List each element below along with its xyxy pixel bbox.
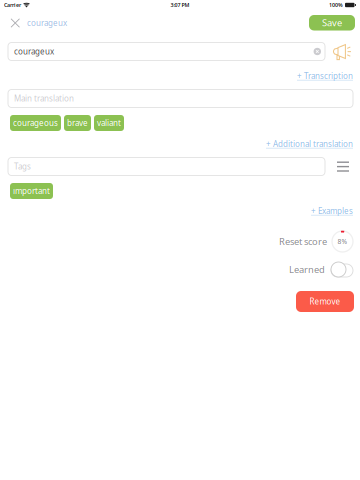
button[interactable]: Main translation <box>8 89 353 107</box>
button[interactable]: Remove <box>296 291 354 312</box>
staticText: important <box>13 186 50 196</box>
staticText: courageux <box>27 18 67 28</box>
staticText: 3:07 PM <box>170 1 189 9</box>
button[interactable]: important <box>10 183 53 199</box>
button[interactable]: courageux <box>8 42 325 60</box>
button[interactable]: Save <box>309 15 355 30</box>
staticText: Remove <box>309 296 340 307</box>
staticText: + Additional translation <box>266 139 353 149</box>
staticText: 8% <box>337 237 347 246</box>
staticText: Main translation <box>14 93 74 104</box>
button[interactable]: Learned <box>289 262 353 277</box>
button[interactable]: brave <box>64 115 91 131</box>
staticText: Tags <box>14 161 31 172</box>
button[interactable]: valiant <box>94 115 124 131</box>
button[interactable]: Close courageux <box>10 17 67 28</box>
button[interactable]: + Additional translation <box>266 138 353 149</box>
button[interactable]: Pronounce <box>332 42 352 62</box>
staticText: Learned <box>289 263 325 276</box>
staticText: Save <box>322 17 342 29</box>
button[interactable]: + Transcription <box>297 70 353 81</box>
staticText: + Transcription <box>297 71 353 81</box>
staticText: brave <box>67 118 88 128</box>
button[interactable]: courageous <box>10 115 61 131</box>
staticText: valiant <box>97 118 121 128</box>
staticText: Reset score <box>279 235 327 248</box>
staticText: courageous <box>13 118 58 128</box>
staticText: + Examples <box>311 206 353 216</box>
button[interactable]: + Examples <box>311 205 353 216</box>
button[interactable]: Tag list <box>337 161 349 172</box>
button[interactable]: Tags <box>8 157 325 175</box>
staticText: courageux <box>14 46 54 57</box>
staticText: 100% <box>329 1 343 9</box>
staticText: Carrier <box>4 1 21 9</box>
button[interactable]: Reset score <box>279 231 353 252</box>
